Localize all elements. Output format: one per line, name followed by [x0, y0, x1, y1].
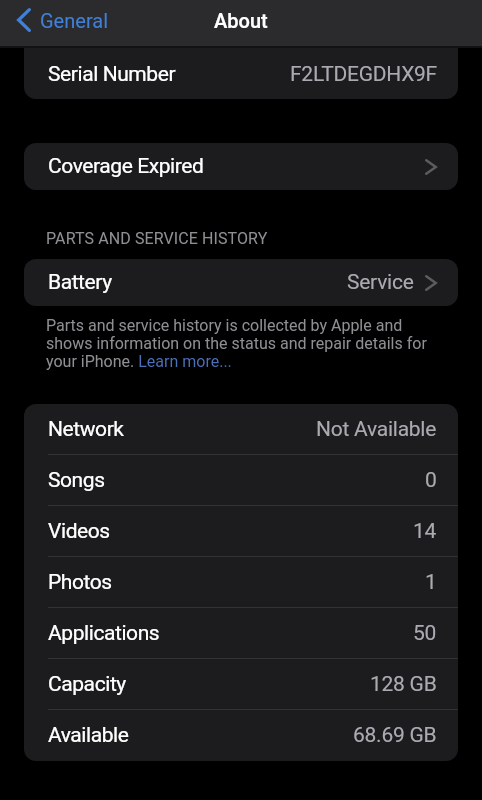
staticText: Capacity: [48, 672, 126, 697]
button[interactable]: Songs: [24, 455, 458, 506]
staticText: Photos: [48, 570, 112, 595]
staticText: 14: [413, 519, 437, 544]
staticText: Not Available: [316, 417, 437, 442]
staticText: PARTS AND SERVICE HISTORY: [46, 229, 268, 248]
button[interactable]: Network: [24, 404, 458, 455]
staticText: Network: [48, 417, 124, 442]
staticText: Videos: [48, 519, 110, 544]
staticText: 128 GB: [370, 672, 437, 697]
button[interactable]: Capacity: [24, 659, 458, 710]
button[interactable]: Serial Number: [24, 50, 458, 99]
button[interactable]: Photos: [24, 557, 458, 608]
button[interactable]: Available: [24, 710, 458, 761]
staticText: Battery: [48, 270, 112, 295]
staticText: General: [40, 9, 109, 32]
staticText: 50: [413, 621, 437, 646]
staticText: Parts and service history is collected b…: [46, 316, 436, 371]
staticText: Serial Number: [48, 62, 176, 87]
staticText: About: [214, 9, 268, 32]
button[interactable]: Battery: [24, 259, 458, 306]
staticText: Coverage Expired: [48, 154, 204, 179]
staticText: Service: [347, 270, 414, 295]
button[interactable]: Coverage Expired: [24, 143, 458, 190]
button[interactable]: Applications: [24, 608, 458, 659]
staticText: Applications: [48, 621, 160, 646]
staticText: 68.69 GB: [353, 723, 437, 748]
staticText: 1: [425, 570, 437, 595]
staticText: F2LTDEGDHX9F: [290, 62, 437, 87]
button[interactable]: Videos: [24, 506, 458, 557]
staticText: 0: [425, 468, 437, 493]
staticText: Songs: [48, 468, 105, 493]
button[interactable]: General: [0, 0, 119, 40]
staticText: Available: [48, 723, 129, 748]
